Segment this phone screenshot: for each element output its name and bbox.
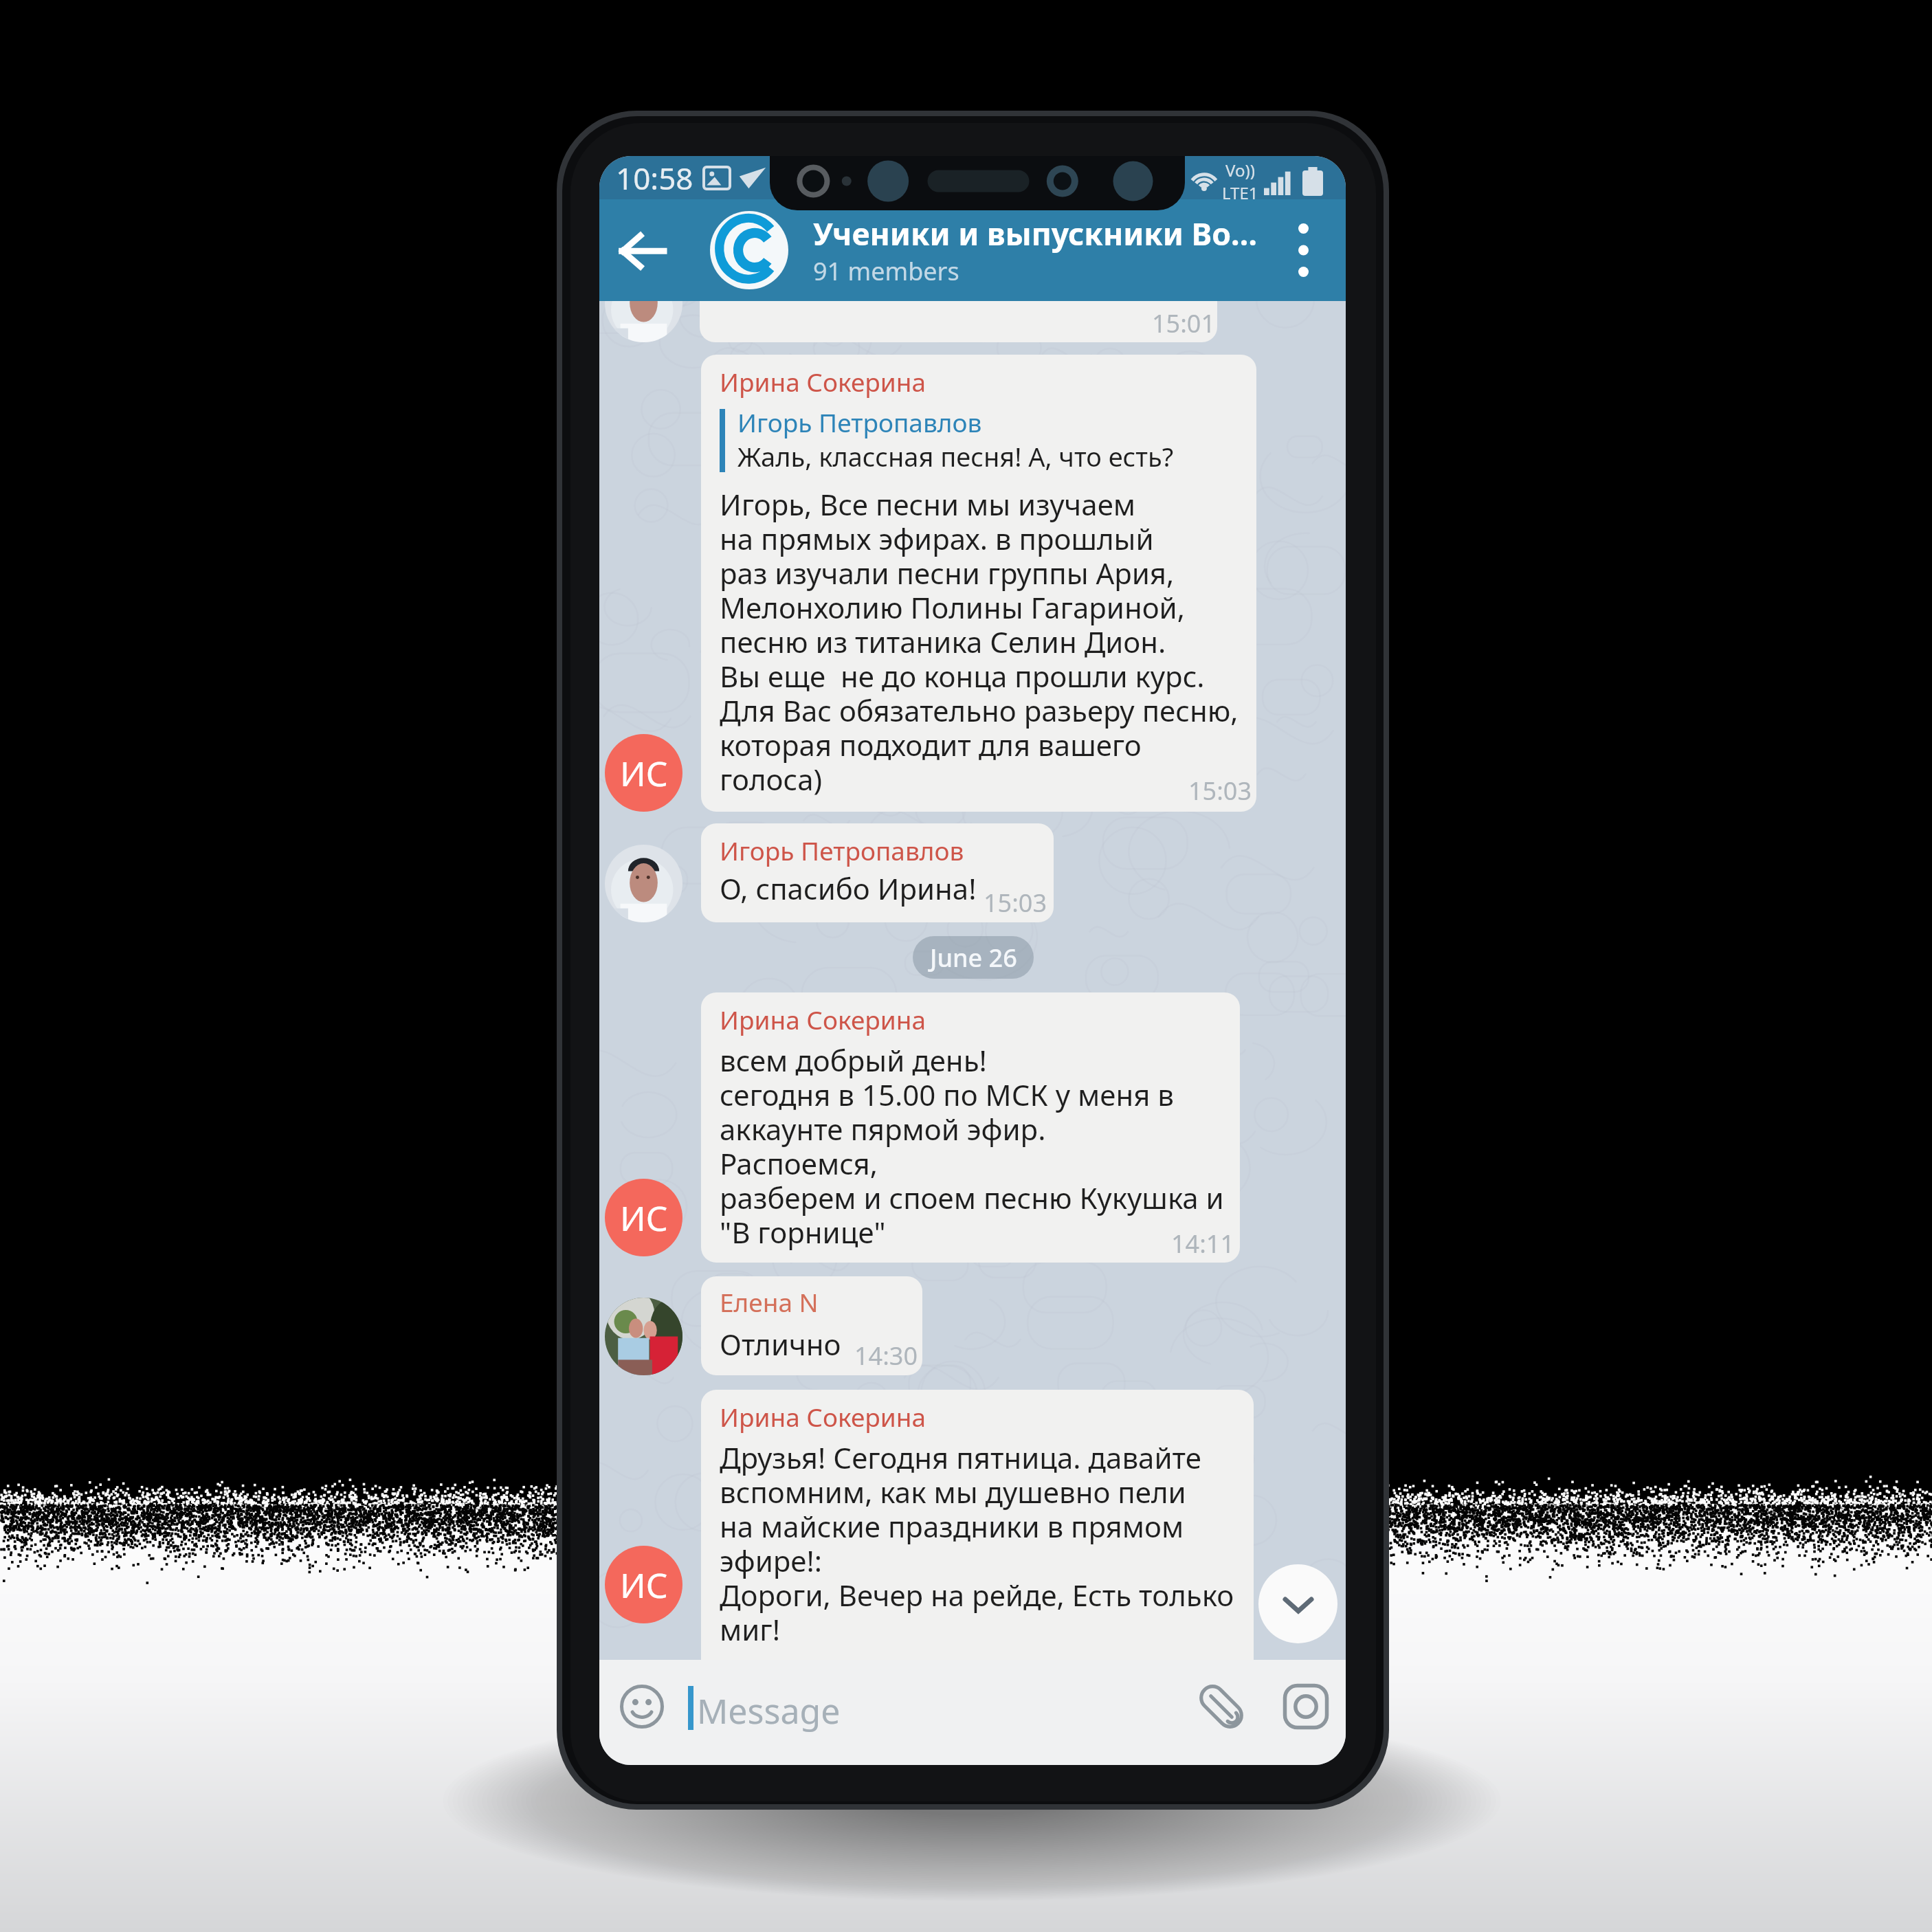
staticText: Елена N <box>720 1285 819 1319</box>
staticText: О, спасибо Ирина! <box>720 869 977 908</box>
button[interactable]: Ирина Сокерина <box>701 1390 1254 1660</box>
staticText: ИС <box>620 1562 668 1608</box>
button[interactable]: Scroll to bottom <box>1258 1564 1337 1643</box>
staticText: Ученики и выпускники Во… <box>813 212 1258 254</box>
staticText: ИС <box>620 750 668 797</box>
staticText: 15:01 <box>1152 307 1216 340</box>
staticText: ИС <box>620 1195 668 1241</box>
staticText: 14:30 <box>854 1339 918 1373</box>
staticText: Игорь, Все песни мы изучаем на прямых эф… <box>720 485 1239 799</box>
button[interactable]: Елена N <box>701 1276 922 1375</box>
staticText: Отлично <box>720 1324 841 1364</box>
staticText: Message <box>697 1687 841 1734</box>
button[interactable]: More options <box>1261 199 1346 301</box>
button[interactable]: Игорь Петропавлов <box>701 823 1054 922</box>
button[interactable]: Back <box>599 199 686 301</box>
staticText: Игорь Петропавлов <box>720 833 964 867</box>
button[interactable]: Ирина Сокерина <box>701 992 1240 1263</box>
button[interactable]: June 26 <box>913 936 1034 979</box>
staticText: 10:58 <box>616 157 693 199</box>
staticText: Жаль, классная песня! А, что есть? <box>737 438 1174 474</box>
staticText: Vo)) <box>1225 159 1255 181</box>
staticText: 91 members <box>813 254 959 288</box>
staticText: 15:03 <box>984 886 1047 920</box>
staticText: Друзья! Сегодня пятница. давайте вспомни… <box>720 1438 1234 1649</box>
staticText: всем добрый день! сегодня в 15.00 по МСК… <box>720 1041 1224 1252</box>
staticText: Ирина Сокерина <box>720 1399 926 1434</box>
button[interactable]: Emoji <box>603 1668 680 1745</box>
staticText: Ирина Сокерина <box>720 1002 926 1036</box>
button[interactable]: Attach file <box>1183 1668 1260 1745</box>
staticText: 15:03 <box>1188 774 1252 808</box>
staticText: 14:11 <box>1171 1227 1235 1261</box>
staticText: Ирина Сокерина <box>720 364 926 399</box>
button[interactable]: Ирина Сокерина <box>701 355 1256 812</box>
staticText: Игорь Петропавлов <box>737 405 982 439</box>
button[interactable]: Back <box>599 199 1346 301</box>
staticText: June 26 <box>930 941 1017 975</box>
button[interactable]: 15:01 <box>700 214 1217 342</box>
button[interactable]: Camera <box>1267 1668 1344 1745</box>
staticText: LTE1 <box>1222 181 1258 204</box>
